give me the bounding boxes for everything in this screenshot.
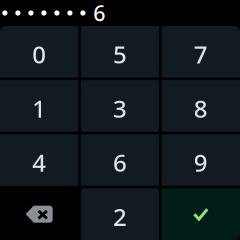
staticText: 6	[93, 0, 105, 27]
staticText: 7	[194, 38, 208, 70]
staticText: 6	[113, 147, 127, 178]
staticText: 1	[32, 92, 46, 124]
staticText: 2	[113, 201, 127, 233]
button[interactable]: Confirm	[162, 188, 240, 240]
staticText: 4	[32, 147, 46, 178]
button[interactable]: Delete	[0, 188, 78, 240]
button[interactable]: 9	[162, 134, 240, 186]
button[interactable]: 1	[0, 80, 78, 132]
button[interactable]: 3	[81, 80, 159, 132]
button[interactable]: 8	[162, 80, 240, 132]
staticText: 8	[194, 92, 208, 124]
button[interactable]: 0	[0, 26, 78, 78]
staticText: 0	[32, 38, 46, 70]
staticText: 9	[194, 147, 208, 178]
button[interactable]: 5	[81, 26, 159, 78]
button[interactable]: 7	[162, 26, 240, 78]
button[interactable]: 6	[81, 134, 159, 186]
button[interactable]: 4	[0, 134, 78, 186]
button[interactable]: 2	[81, 188, 159, 240]
staticText: 5	[113, 38, 127, 70]
staticText: 3	[113, 92, 127, 124]
